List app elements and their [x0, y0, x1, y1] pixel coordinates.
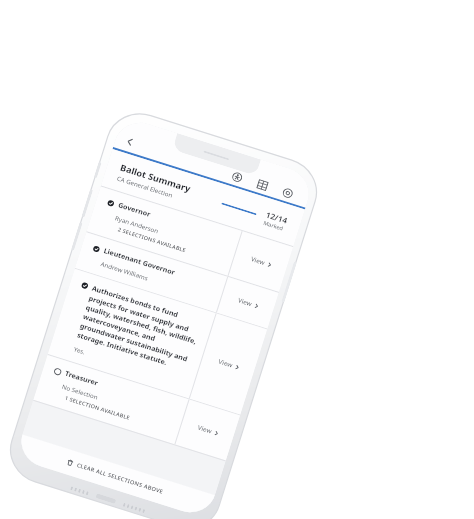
staticText: 12/14	[265, 209, 289, 226]
staticText: Yes.	[73, 344, 87, 355]
staticText: Ballot Summary	[119, 161, 192, 194]
staticText: Marked	[262, 219, 285, 233]
button[interactable]: View	[228, 231, 293, 292]
staticText: Andrew Williams	[100, 259, 150, 282]
button[interactable]: Accessibility	[227, 167, 246, 186]
button[interactable]: View	[217, 277, 279, 329]
staticText: View	[237, 296, 253, 308]
staticText: 2 SELECTIONS AVAILABLE	[117, 225, 187, 253]
staticText: Governor	[117, 200, 152, 220]
button[interactable]: View	[175, 400, 240, 460]
staticText: 1 SELECTION AVAILABLE	[64, 394, 131, 421]
button[interactable]: Settings	[278, 183, 297, 202]
staticText: Ryan Anderson	[114, 214, 160, 235]
staticText: View	[217, 357, 234, 369]
button[interactable]: Language	[253, 175, 272, 194]
staticText: CLEAR ALL SELECTIONS ABOVE	[76, 461, 165, 496]
button[interactable]: Treasurer	[33, 355, 240, 460]
button[interactable]: Authorizes bonds to fund projects for wa…	[48, 269, 267, 415]
button[interactable]: View	[190, 314, 267, 415]
button[interactable]: CLEAR ALL SELECTIONS ABOVE	[15, 434, 215, 519]
staticText: Lieutenant Governor	[102, 246, 176, 278]
staticText: Authorizes bonds to fund projects for wa…	[76, 284, 207, 375]
button[interactable]: Lieutenant Governor	[75, 232, 279, 329]
staticText: View	[250, 254, 266, 267]
staticText: No Selection	[61, 382, 99, 401]
staticText: Treasurer	[64, 369, 100, 389]
button[interactable]: Back	[120, 131, 140, 151]
staticText: View	[197, 423, 213, 435]
staticText: CA General Election	[116, 174, 174, 199]
button[interactable]: Governor	[86, 186, 293, 292]
